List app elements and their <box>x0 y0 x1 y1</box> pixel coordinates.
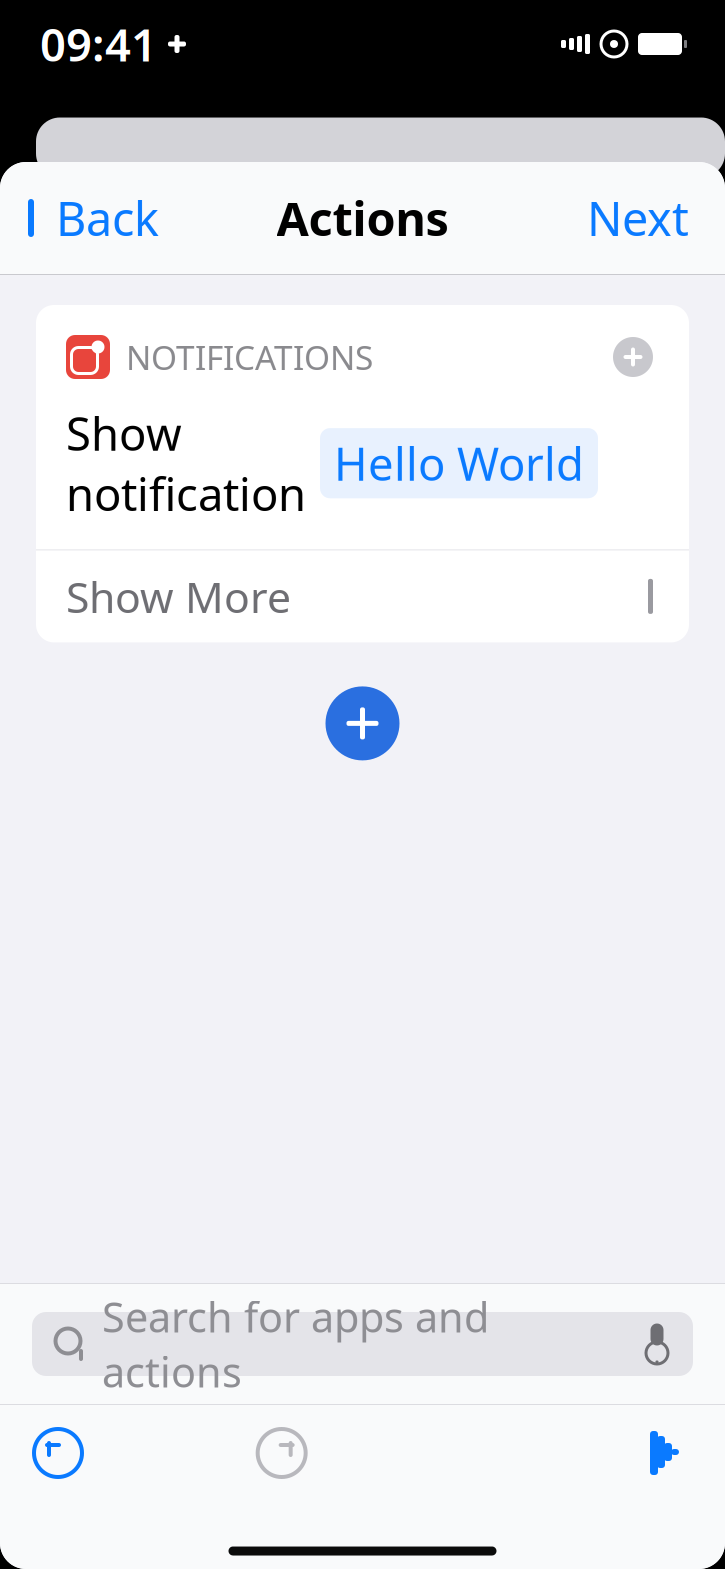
staticText: Actions <box>276 187 448 249</box>
button[interactable]: Undo <box>2 1409 86 1497</box>
button[interactable]: Hello World <box>320 428 598 498</box>
staticText: Search for apps and actions <box>102 1289 489 1399</box>
staticText: Next <box>587 187 689 249</box>
button[interactable]: Next <box>587 175 725 261</box>
button[interactable]: Remove action <box>607 331 659 383</box>
button[interactable]: Run shortcut <box>645 1412 723 1494</box>
staticText: 09:41 <box>40 14 157 74</box>
staticText: Back <box>56 187 159 249</box>
button[interactable]: Add action <box>313 674 411 772</box>
button[interactable]: Back <box>0 175 159 261</box>
staticText: NOTIFICATIONS <box>126 335 373 379</box>
staticText: Show More <box>66 568 291 625</box>
button[interactable]: Show More <box>36 550 689 642</box>
button[interactable]: Search for apps and actions <box>0 1284 725 1404</box>
staticText: Show notification <box>66 403 306 523</box>
button[interactable]: Redo <box>254 1409 310 1497</box>
staticText: Hello World <box>334 433 584 493</box>
